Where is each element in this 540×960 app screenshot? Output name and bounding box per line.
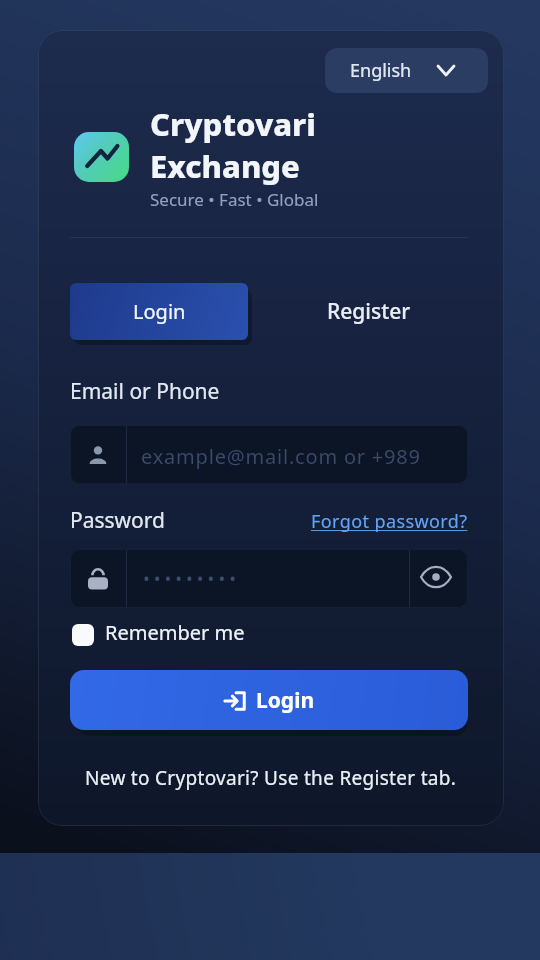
staticText: Remember me <box>105 619 245 646</box>
staticText: Forgot password? <box>311 509 468 534</box>
staticText: Email or Phone <box>70 377 220 406</box>
staticText: Cryptovari <box>150 103 316 145</box>
staticText: English <box>350 58 412 83</box>
staticText: example@mail.com or +989 <box>141 443 421 470</box>
staticText: Login <box>133 298 186 325</box>
staticText: Secure • Fast • Global <box>150 188 319 211</box>
staticText: Login <box>256 686 315 715</box>
staticText: Exchange <box>150 145 300 187</box>
staticText: ••••••••• <box>143 566 240 591</box>
staticText: New to Cryptovari? Use the Register tab. <box>85 765 457 791</box>
staticText: Register <box>327 297 411 326</box>
staticText: Password <box>70 506 165 535</box>
